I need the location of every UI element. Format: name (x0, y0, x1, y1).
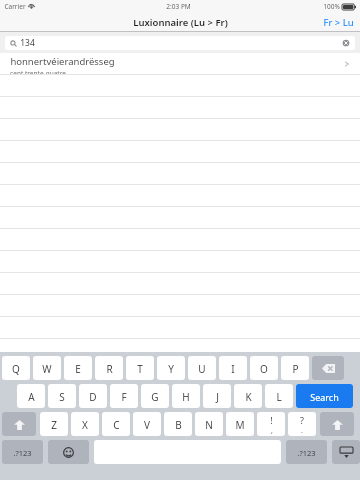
staticText: R (106, 362, 113, 376)
staticText: Fr > Lu (323, 16, 354, 29)
button[interactable]: E (64, 356, 92, 381)
staticText: C (113, 418, 120, 432)
staticText: 100% (323, 2, 340, 11)
button[interactable]: J (203, 384, 231, 409)
staticText: 134 (20, 37, 35, 49)
button[interactable]: Emoji (48, 440, 89, 465)
button[interactable]: M (226, 412, 254, 437)
button[interactable]: G (141, 384, 169, 409)
staticText: X (82, 418, 88, 432)
button[interactable]: Search (296, 384, 353, 409)
button[interactable]: F (110, 384, 138, 409)
button[interactable]: Q (2, 356, 30, 381)
button[interactable]: ! (257, 412, 285, 437)
button[interactable]: Shift (320, 412, 354, 437)
staticText: G (151, 390, 159, 404)
button[interactable]: C (102, 412, 130, 437)
button[interactable]: W (33, 356, 61, 381)
button[interactable]: L (265, 384, 293, 409)
staticText: E (75, 362, 81, 376)
button[interactable]: K (234, 384, 262, 409)
button[interactable]: A (17, 384, 45, 409)
staticText: W (42, 362, 52, 376)
staticText: .?123 (297, 448, 316, 458)
staticText: D (89, 390, 97, 404)
staticText: I (231, 362, 235, 376)
staticText: A (28, 390, 35, 404)
button[interactable]: O (250, 356, 278, 381)
button[interactable]: Y (157, 356, 185, 381)
button[interactable]: U (188, 356, 216, 381)
staticText: honnertvéierandrësseg (10, 55, 115, 68)
button[interactable]: V (133, 412, 161, 437)
staticText: P (292, 362, 299, 376)
staticText: S (59, 390, 65, 404)
staticText: , (271, 426, 273, 436)
staticText: N (205, 418, 213, 432)
button[interactable]: R (95, 356, 123, 381)
button[interactable]: Backspace (312, 356, 344, 381)
staticText: T (137, 362, 143, 376)
staticText: J (216, 390, 219, 404)
staticText: cent trente-quatre (10, 69, 66, 75)
button[interactable]: Hide keyboard (332, 440, 360, 465)
button[interactable]: .?123 (2, 440, 43, 465)
button[interactable]: N (195, 412, 223, 437)
staticText: H (182, 390, 190, 404)
staticText: O (260, 362, 268, 376)
staticText: B (175, 418, 182, 432)
button[interactable]: Clear text (342, 39, 350, 47)
staticText: . (301, 426, 303, 436)
button[interactable]: D (79, 384, 107, 409)
staticText: Carrier (4, 2, 26, 11)
staticText: ? (300, 414, 304, 426)
button[interactable]: T (126, 356, 154, 381)
button[interactable]: Z (40, 412, 68, 437)
button[interactable]: H (172, 384, 200, 409)
button[interactable]: S (48, 384, 76, 409)
button[interactable]: X (71, 412, 99, 437)
staticText: Luxionnaire (Lu > Fr) (133, 16, 228, 29)
button[interactable]: B (164, 412, 192, 437)
button[interactable]: .?123 (286, 440, 327, 465)
staticText: 2:03 PM (166, 2, 191, 11)
staticText: V (144, 418, 150, 432)
staticText: U (198, 362, 206, 376)
staticText: ! (270, 414, 273, 426)
button[interactable]: I (219, 356, 247, 381)
staticText: Search (310, 391, 339, 403)
button[interactable]: P (281, 356, 309, 381)
staticText: Z (51, 418, 57, 432)
button[interactable]: 134 (5, 36, 355, 50)
button[interactable]: Shift (2, 412, 36, 437)
button[interactable]: ? (288, 412, 316, 437)
staticText: L (276, 390, 282, 404)
staticText: Y (168, 362, 174, 376)
staticText: K (245, 390, 252, 404)
staticText: .?123 (13, 448, 32, 458)
button[interactable]: Fr > Lu (323, 16, 354, 29)
staticText: F (121, 390, 127, 404)
button[interactable]: Space (94, 440, 281, 465)
button[interactable]: honnertvéierandrësseg (0, 53, 360, 75)
staticText: Q (12, 362, 20, 376)
staticText: M (235, 418, 245, 432)
